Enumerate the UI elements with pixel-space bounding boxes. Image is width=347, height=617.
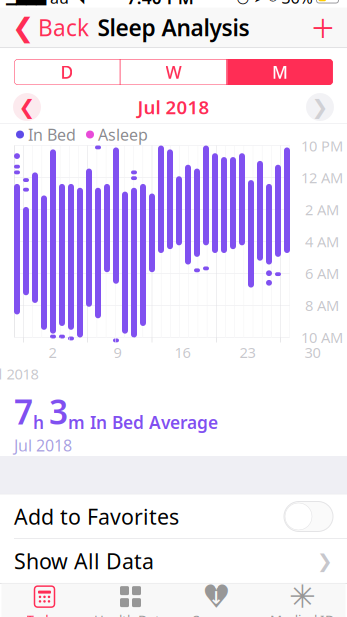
staticText: ❮ [18,96,35,118]
staticText: 3 [49,389,68,434]
button[interactable]: M [227,59,333,85]
button[interactable]: ✳ [259,583,345,617]
staticText: ⏱ [264,0,277,4]
staticText: 9 [113,342,121,362]
staticText: + [311,1,334,54]
staticText: Show All Data [14,547,154,575]
staticText: Medical ID [270,611,335,617]
staticText: ↓ [209,588,224,607]
staticText: Sleep Analysis [97,12,249,43]
staticText: 8 AM [305,296,339,315]
button[interactable]: Today [1,583,87,617]
staticText: D [60,60,73,83]
staticText: Back [38,12,89,43]
button[interactable]: Next month [303,90,337,124]
staticText: ▁▃▅▇ [6,0,46,5]
button[interactable]: ❮ [4,7,97,47]
staticText: au [46,0,73,8]
staticText: ♥ [202,578,231,615]
staticText: Jul 2018 [14,435,72,456]
staticText: In Bed Average [90,411,218,434]
staticText: ❯ [311,96,328,118]
button[interactable]: ♥ [173,583,259,617]
staticText: 4 AM [305,232,339,251]
staticText: 7:40 PM [127,0,194,9]
staticText: M [272,60,288,83]
staticText: 2 AM [305,200,339,219]
button[interactable]: Health Data [87,583,173,617]
staticText: ◥ [73,0,84,6]
button[interactable]: Previous month [10,90,44,124]
staticText: 7 [14,389,33,434]
staticText: ✳ [289,578,316,615]
staticText: 12 AM [301,168,343,187]
button[interactable]: Add Data [303,7,343,47]
staticText: ❯ [317,550,333,572]
staticText: 6 AM [305,264,339,283]
staticText: 23 [239,342,255,362]
staticText: W [165,60,181,83]
staticText: 16 [174,342,190,362]
staticText: Jul 2018 [0,364,38,383]
staticText: ➤ [249,0,264,5]
staticText: Asleep [94,124,148,145]
staticText: Health Data [94,611,167,617]
staticText: 30 [304,342,320,362]
staticText: In Bed [24,124,76,145]
staticText: h [33,411,49,434]
staticText: 10 AM [301,327,343,347]
button[interactable]: Add to Favorites [0,494,347,538]
staticText: Jul 2018 [137,95,209,119]
staticText: 2 [48,342,56,362]
button[interactable]: W [121,59,226,85]
staticText: Today [26,611,62,617]
staticText: 36% [277,0,316,8]
staticText: m [68,411,90,434]
staticText: Sources [192,611,240,617]
button[interactable]: D [14,59,120,85]
staticText: 10 PM [301,136,343,155]
button[interactable]: Show All Data [0,539,347,583]
staticText: ◔ [236,0,249,6]
staticText: ❮ [12,12,34,43]
staticText: Add to Favorites [14,502,179,531]
